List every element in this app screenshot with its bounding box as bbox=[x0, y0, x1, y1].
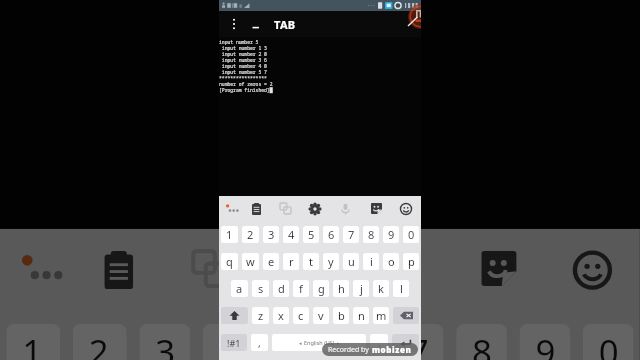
button[interactable]: y bbox=[323, 253, 339, 270]
button[interactable]: 4 bbox=[203, 324, 253, 360]
button[interactable]: g bbox=[313, 280, 329, 297]
button[interactable]: q bbox=[221, 253, 238, 270]
button[interactable]: 3 bbox=[139, 324, 190, 360]
staticText: l bbox=[400, 281, 403, 296]
button[interactable]: v bbox=[313, 307, 329, 324]
staticText: [Program finished]█ bbox=[219, 87, 273, 93]
button[interactable]: 6 bbox=[323, 226, 339, 243]
staticText: TAB bbox=[274, 17, 296, 32]
button[interactable]: TAB bbox=[274, 17, 296, 32]
button[interactable]: u bbox=[343, 253, 359, 270]
staticText: 1 bbox=[22, 327, 44, 360]
staticText: . bbox=[378, 336, 381, 350]
button[interactable]: 9 bbox=[383, 226, 399, 243]
staticText: z bbox=[258, 308, 264, 323]
button[interactable]: 0 bbox=[583, 324, 634, 360]
button[interactable]: Stickers bbox=[366, 196, 386, 221]
button[interactable]: 3 bbox=[263, 226, 279, 243]
button[interactable]: Translate bbox=[177, 229, 241, 308]
button[interactable]: Emoji bbox=[396, 196, 416, 221]
staticText: y bbox=[328, 254, 334, 269]
button[interactable]: Symbols bbox=[221, 334, 247, 351]
button[interactable]: 4 bbox=[283, 226, 299, 243]
button[interactable]: 0 bbox=[403, 226, 419, 243]
button[interactable]: Voice input bbox=[335, 196, 355, 221]
button[interactable]: f bbox=[293, 280, 309, 297]
button[interactable]: x bbox=[273, 307, 289, 324]
button[interactable]: p bbox=[403, 253, 419, 270]
button[interactable]: 2 bbox=[73, 324, 127, 360]
button[interactable]: j bbox=[353, 280, 369, 297]
staticText: !#1 bbox=[227, 337, 241, 349]
staticText: ▸ bbox=[337, 340, 340, 346]
staticText: mobizen bbox=[372, 344, 412, 355]
button[interactable]: Clipboard bbox=[246, 196, 266, 221]
staticText: v bbox=[318, 308, 324, 323]
button[interactable]: Expand toolbar bbox=[222, 196, 240, 221]
staticText: 5 bbox=[282, 327, 304, 360]
staticText: t bbox=[309, 254, 313, 269]
staticText: c bbox=[298, 308, 304, 323]
staticText: 7 bbox=[409, 327, 431, 360]
button[interactable]: m bbox=[373, 307, 389, 324]
button[interactable]: Backspace bbox=[393, 307, 419, 324]
staticText: k bbox=[378, 281, 384, 296]
staticText: 0 bbox=[599, 327, 621, 360]
button[interactable]: k bbox=[373, 280, 389, 297]
button[interactable]: Stickers bbox=[466, 229, 529, 308]
staticText: English (US) bbox=[304, 339, 335, 346]
button[interactable]: Expand toolbar bbox=[9, 229, 66, 308]
button[interactable]: 7 bbox=[393, 324, 443, 360]
button[interactable]: 7 bbox=[343, 226, 359, 243]
button[interactable]: 5 bbox=[266, 324, 317, 360]
staticText: s bbox=[258, 281, 264, 296]
staticText: p bbox=[408, 254, 415, 269]
staticText: e bbox=[268, 254, 275, 269]
button[interactable]: Settings bbox=[305, 196, 325, 221]
button[interactable]: Space bbox=[272, 334, 366, 351]
button[interactable]: t bbox=[303, 253, 319, 270]
button[interactable]: 1 bbox=[6, 324, 60, 360]
button[interactable]: a bbox=[231, 280, 248, 297]
button[interactable]: More options bbox=[227, 17, 241, 31]
button[interactable]: 8 bbox=[456, 324, 507, 360]
button[interactable]: l bbox=[393, 280, 409, 297]
button[interactable]: r bbox=[283, 253, 299, 270]
button[interactable]: Hide keyboard bbox=[249, 17, 263, 31]
button[interactable]: 5 bbox=[303, 226, 319, 243]
staticText: input number 2 0 bbox=[219, 51, 267, 57]
button[interactable]: Settings bbox=[272, 229, 336, 308]
staticText: 0 bbox=[408, 227, 415, 242]
button[interactable]: o bbox=[383, 253, 399, 270]
staticText: , bbox=[258, 336, 261, 350]
button[interactable]: 2 bbox=[242, 226, 259, 243]
staticText: m bbox=[376, 308, 387, 323]
staticText: d bbox=[278, 281, 285, 296]
staticText: ***************** bbox=[219, 75, 267, 81]
button[interactable]: Emoji bbox=[561, 229, 624, 308]
button[interactable]: 9 bbox=[520, 324, 570, 360]
button[interactable]: Shift bbox=[221, 307, 248, 324]
button[interactable]: . bbox=[370, 334, 388, 351]
button[interactable]: n bbox=[353, 307, 369, 324]
button[interactable]: e bbox=[263, 253, 279, 270]
button[interactable]: c bbox=[293, 307, 309, 324]
button[interactable]: Clipboard bbox=[85, 229, 149, 308]
button[interactable]: i bbox=[363, 253, 379, 270]
button[interactable]: , bbox=[251, 334, 268, 351]
button[interactable]: Translate bbox=[275, 196, 295, 221]
button[interactable]: 8 bbox=[363, 226, 379, 243]
button[interactable]: 1 bbox=[221, 226, 238, 243]
button[interactable]: Enter bbox=[392, 334, 419, 351]
button[interactable]: 6 bbox=[329, 324, 380, 360]
button[interactable]: b bbox=[333, 307, 349, 324]
staticText: i bbox=[370, 254, 373, 269]
staticText: input number 5 7 bbox=[219, 69, 267, 75]
button[interactable]: z bbox=[252, 307, 269, 324]
staticText: b bbox=[338, 308, 345, 323]
button[interactable]: h bbox=[333, 280, 349, 297]
button[interactable]: s bbox=[252, 280, 269, 297]
button[interactable]: d bbox=[273, 280, 289, 297]
button[interactable]: w bbox=[242, 253, 259, 270]
button[interactable]: Voice input bbox=[367, 229, 431, 308]
